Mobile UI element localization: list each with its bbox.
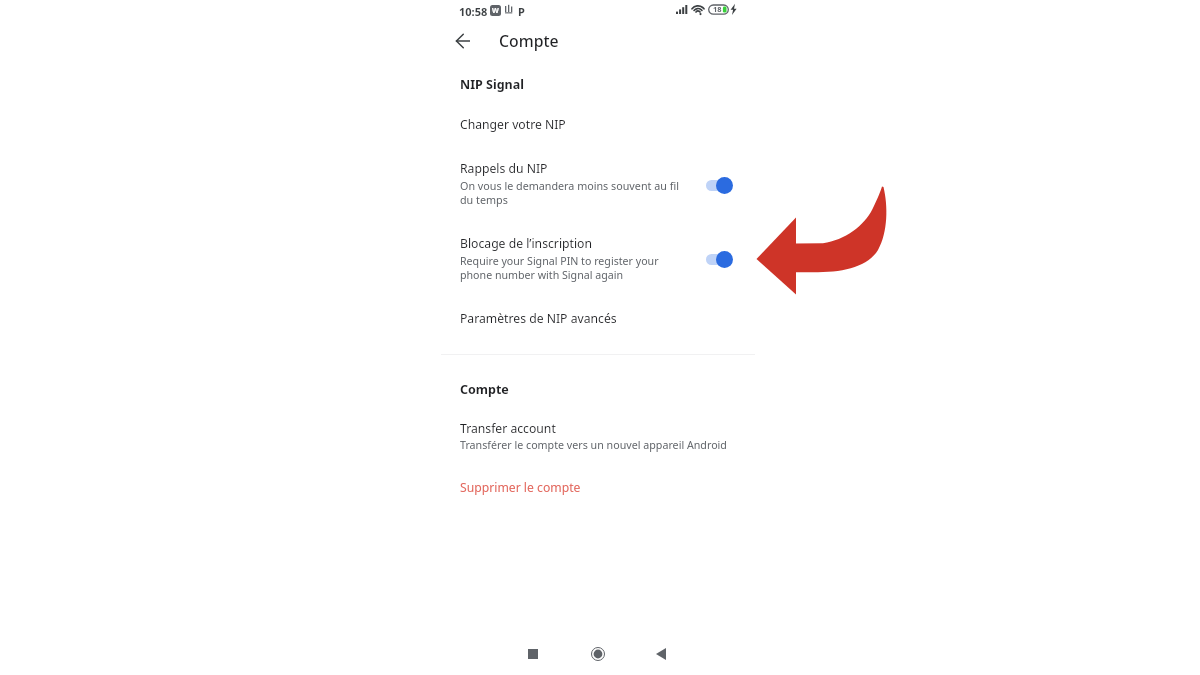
- button[interactable]: [441, 300, 755, 338]
- staticText: Changer votre NIP: [460, 116, 566, 133]
- staticText: P: [518, 4, 525, 19]
- staticText: Compte: [460, 381, 509, 398]
- button[interactable]: Toggle setting: [698, 242, 742, 276]
- staticText: Blocage de l’inscription: [460, 235, 592, 252]
- button[interactable]: [441, 152, 755, 214]
- staticText: Transfer account: [460, 420, 556, 437]
- button[interactable]: [441, 105, 755, 143]
- button[interactable]: Recent apps: [519, 640, 547, 668]
- staticText: Require your Signal PIN to register your: [460, 254, 659, 269]
- staticText: Transférer le compte vers un nouvel appa…: [460, 438, 727, 453]
- staticText: phone number with Signal again: [460, 268, 623, 283]
- button[interactable]: Back: [647, 640, 675, 668]
- staticText: On vous le demandera moins souvent au fi…: [460, 179, 679, 194]
- staticText: Paramètres de NIP avancés: [460, 310, 617, 327]
- button[interactable]: [441, 228, 755, 290]
- staticText: Supprimer le compte: [460, 479, 581, 496]
- staticText: 10:58: [459, 4, 488, 19]
- staticText: Compte: [499, 30, 559, 52]
- staticText: W: [492, 6, 499, 16]
- staticText: Rappels du NIP: [460, 160, 548, 177]
- staticText: NIP Signal: [460, 76, 524, 93]
- button[interactable]: Home: [584, 640, 612, 668]
- button[interactable]: [441, 410, 755, 458]
- button[interactable]: [441, 470, 755, 508]
- staticText: 18: [713, 4, 722, 14]
- button[interactable]: Navigate up: [447, 25, 479, 57]
- button[interactable]: Toggle setting: [698, 168, 742, 202]
- staticText: du temps: [460, 193, 508, 208]
